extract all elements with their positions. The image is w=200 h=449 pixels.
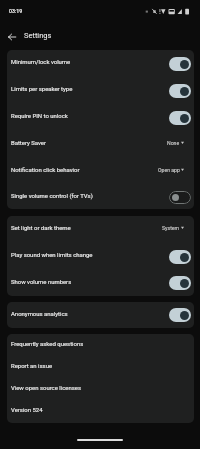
staticText: Settings <box>24 31 52 40</box>
staticText: View open source licenses <box>11 384 82 391</box>
button[interactable]: Limits per speaker type <box>7 77 194 104</box>
staticText: System <box>162 225 180 231</box>
button[interactable]: Battery Saver <box>7 131 194 158</box>
button[interactable]: Play sound when limits change <box>7 243 194 270</box>
button[interactable]: Frequently asked questions <box>7 334 194 356</box>
staticText: Anonymous analytics <box>11 310 169 317</box>
button[interactable]: Set light or dark theme <box>7 216 194 243</box>
button[interactable]: Notification click behavior <box>7 158 194 185</box>
button[interactable]: Require PIN to unlock <box>7 104 194 131</box>
staticText: Limits per speaker type <box>11 85 169 92</box>
button[interactable]: Minimum/lock volume <box>7 50 194 77</box>
staticText: Play sound when limits change <box>11 251 169 258</box>
button[interactable]: View open source licenses <box>7 378 194 400</box>
staticText: Minimum/lock volume <box>11 58 169 65</box>
button[interactable]: Report an issue <box>7 356 194 378</box>
staticText: Version 524 <box>11 406 43 413</box>
button[interactable]: Back <box>2 27 22 47</box>
staticText: Single volume control (for TVs) <box>11 192 169 199</box>
button[interactable]: Anonymous analytics <box>7 302 194 328</box>
button[interactable]: Version 524 <box>7 400 194 422</box>
staticText: Show volume numbers <box>11 278 169 285</box>
staticText: Notification click behavior <box>11 166 158 173</box>
staticText: 03:19 <box>9 8 23 14</box>
staticText: Set light or dark theme <box>11 224 162 231</box>
button[interactable]: Show volume numbers <box>7 270 194 296</box>
button[interactable]: Single volume control (for TVs) <box>7 185 194 209</box>
staticText: Require PIN to unlock <box>11 112 169 119</box>
staticText: Open app <box>158 167 180 173</box>
staticText: None <box>167 140 180 146</box>
staticText: Battery Saver <box>11 139 167 146</box>
staticText: Frequently asked questions <box>11 340 84 347</box>
staticText: Report an issue <box>11 362 53 369</box>
